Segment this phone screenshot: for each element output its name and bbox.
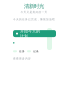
staticText: 记录: [33, 50, 39, 53]
staticText: 开始今天的计划: [20, 29, 40, 38]
staticText: 任务: [19, 50, 25, 53]
staticText: 清新时光: [24, 3, 44, 10]
staticText: 今天又是美好的一天: [20, 11, 47, 14]
staticText: 查看更多内容: [13, 57, 31, 60]
staticText: 今天的任务已完成，继续加油吧: [13, 18, 55, 21]
button[interactable]: 开始今天的计划: [13, 30, 56, 37]
